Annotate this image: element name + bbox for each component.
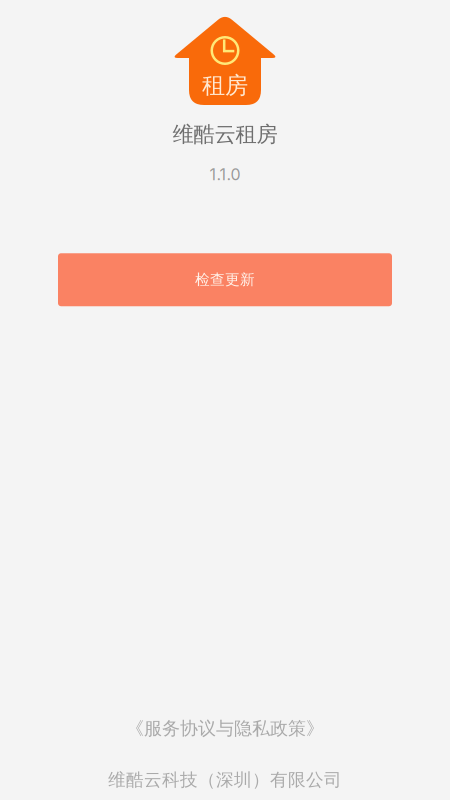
staticText: 租房 [202, 71, 248, 100]
button[interactable]: 检查更新 [58, 253, 392, 306]
staticText: 检查更新 [195, 270, 255, 289]
button[interactable]: 《服务协议与隐私政策》 [126, 717, 324, 740]
staticText: 1.1.0 [209, 165, 240, 184]
staticText: 《服务协议与隐私政策》 [126, 717, 324, 740]
staticText: 维酷云租房 [172, 121, 277, 148]
staticText: 维酷云科技（深圳）有限公司 [108, 769, 342, 791]
